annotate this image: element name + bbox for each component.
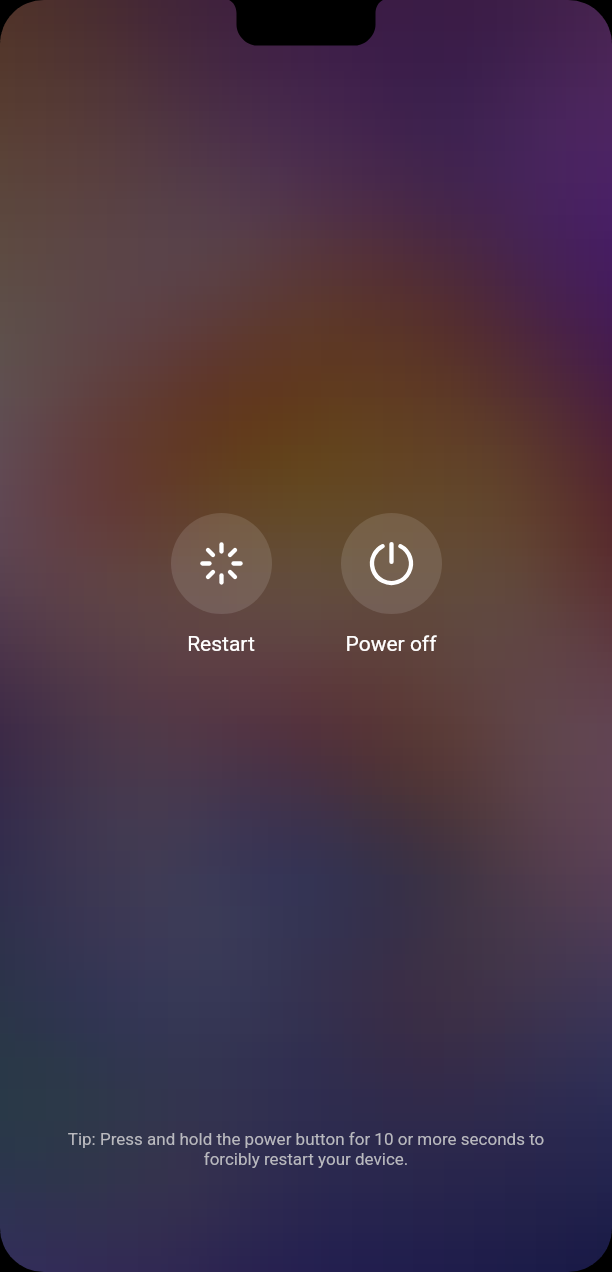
button[interactable]: Restart xyxy=(171,513,272,614)
button[interactable]: Restart xyxy=(146,632,296,657)
button[interactable]: Power off xyxy=(316,632,466,657)
button[interactable]: Power off xyxy=(341,513,442,614)
staticText: Tip: Press and hold the power button for… xyxy=(56,1129,556,1169)
